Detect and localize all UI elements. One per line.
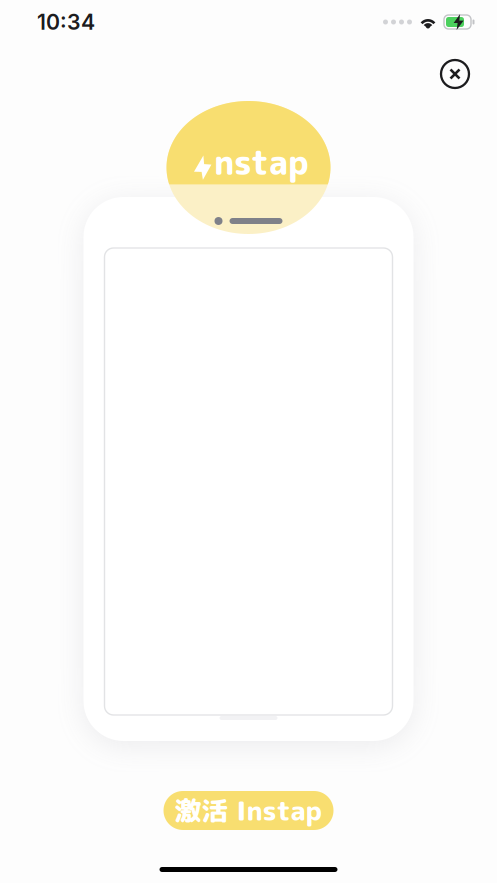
staticText: 激活 Instap [174,792,322,829]
staticText: nstap [214,139,309,185]
button[interactable]: 激活 Instap [163,791,333,830]
button[interactable]: Close [433,52,477,96]
staticText: 10:34 [37,9,95,35]
